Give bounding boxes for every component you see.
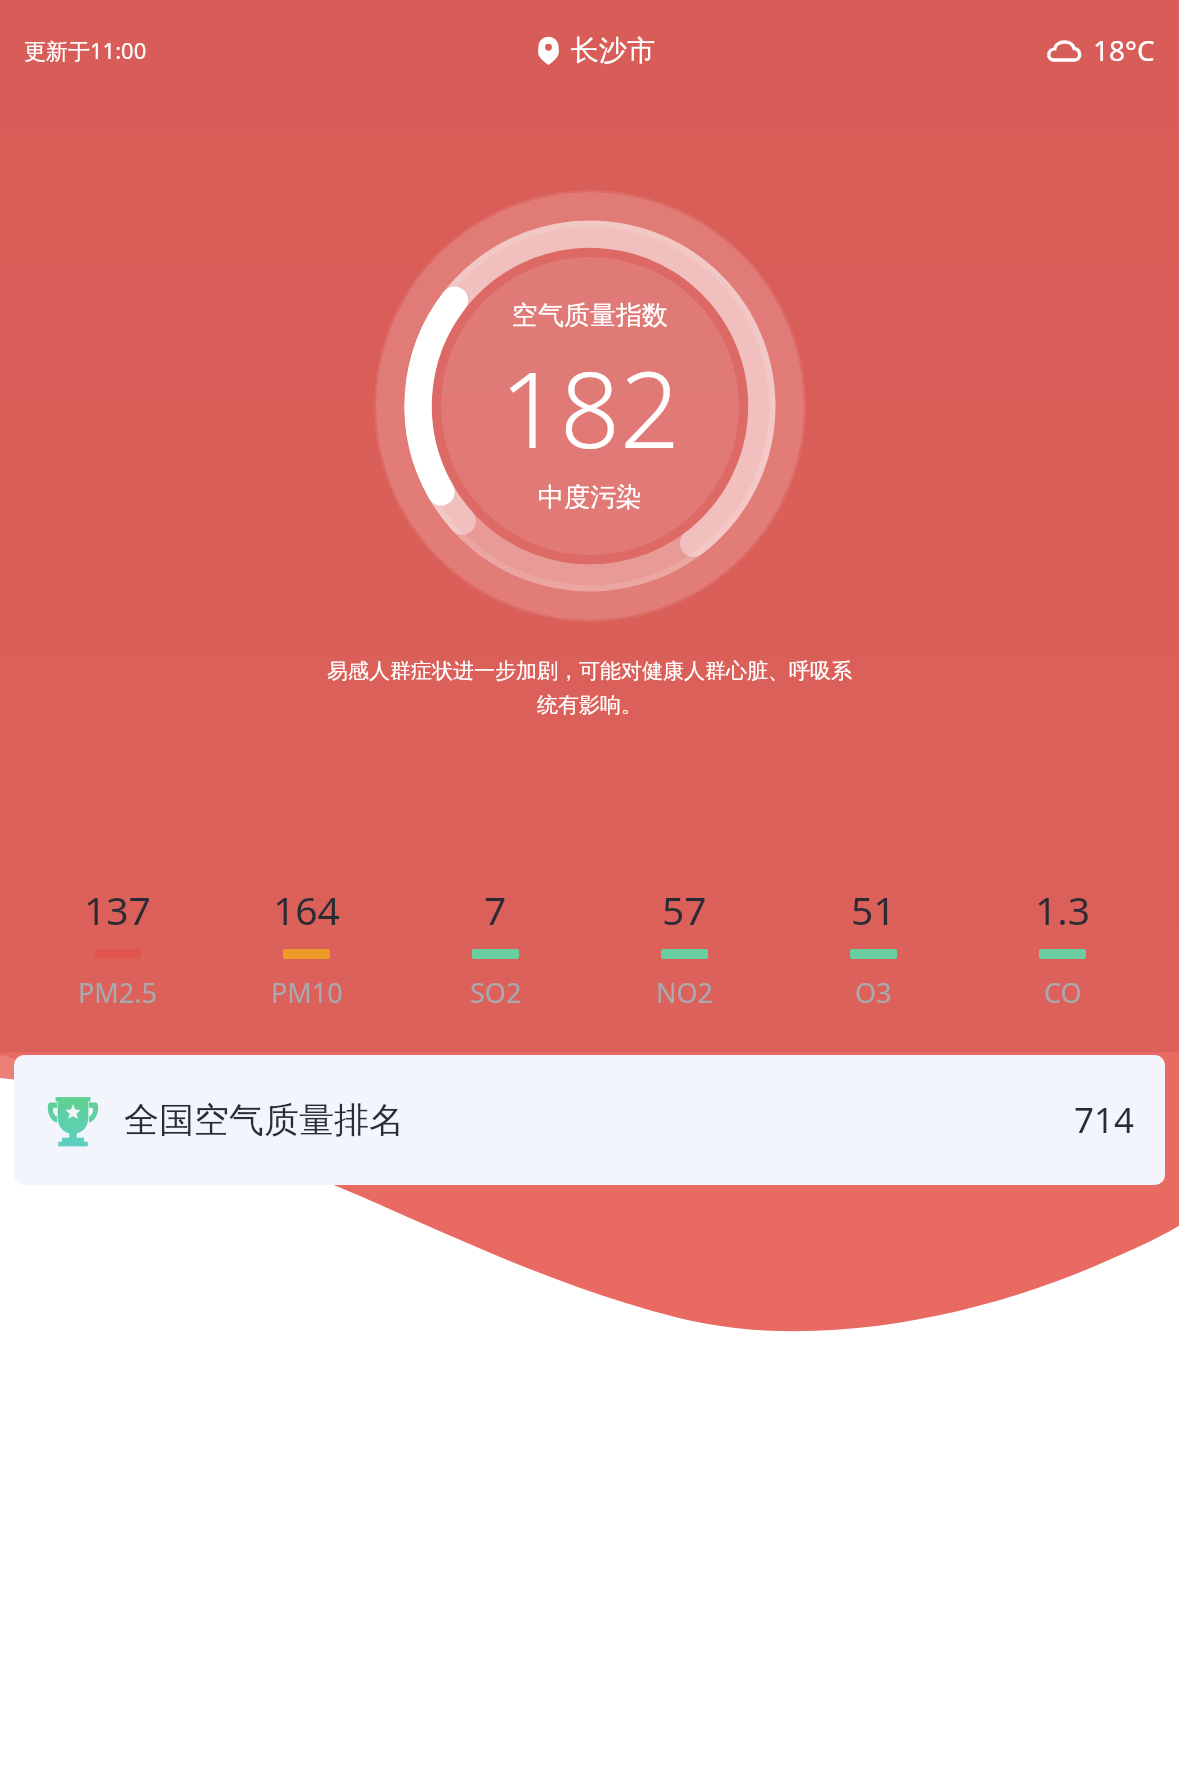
button[interactable]: 更新于11:00 [24, 35, 147, 65]
staticText: 164 [273, 883, 340, 936]
other: Weather [1046, 37, 1082, 64]
button[interactable]: 137 [22, 883, 212, 1011]
staticText: 长沙市 [571, 33, 655, 68]
staticText: 182 [500, 336, 680, 479]
button[interactable]: 51 [779, 883, 968, 1011]
staticText: NO2 [656, 974, 714, 1011]
staticText: 1.3 [1035, 883, 1091, 936]
other: Location [537, 36, 560, 65]
button[interactable]: 7 [401, 883, 590, 1011]
staticText: 18°C [1093, 31, 1155, 69]
staticText: 中度污染 [538, 481, 642, 514]
button[interactable]: 1.3 [968, 883, 1157, 1011]
button[interactable]: 164 [212, 883, 401, 1011]
staticText: 全国空气质量排名 [124, 1098, 404, 1142]
staticText: SO2 [470, 974, 522, 1011]
button[interactable]: Ranking [14, 1055, 1165, 1185]
button[interactable]: Weather [1046, 31, 1155, 69]
staticText: 7 [484, 883, 507, 936]
button[interactable]: Location [537, 33, 655, 68]
staticText: 易感人群症状进一步加剧，可能对健康人群心脏、呼吸系 统有影响。 [16, 658, 1163, 718]
staticText: PM10 [271, 974, 343, 1011]
staticText: CO [1044, 974, 1082, 1011]
button[interactable]: 57 [590, 883, 779, 1011]
staticText: 714 [1074, 1096, 1135, 1144]
staticText: PM2.5 [78, 974, 157, 1011]
staticText: 51 [851, 883, 896, 936]
staticText: O3 [855, 974, 892, 1011]
staticText: 57 [662, 883, 707, 936]
staticText: 137 [84, 883, 151, 936]
other: Ranking [44, 1091, 102, 1149]
staticText: 空气质量指数 [512, 299, 668, 332]
